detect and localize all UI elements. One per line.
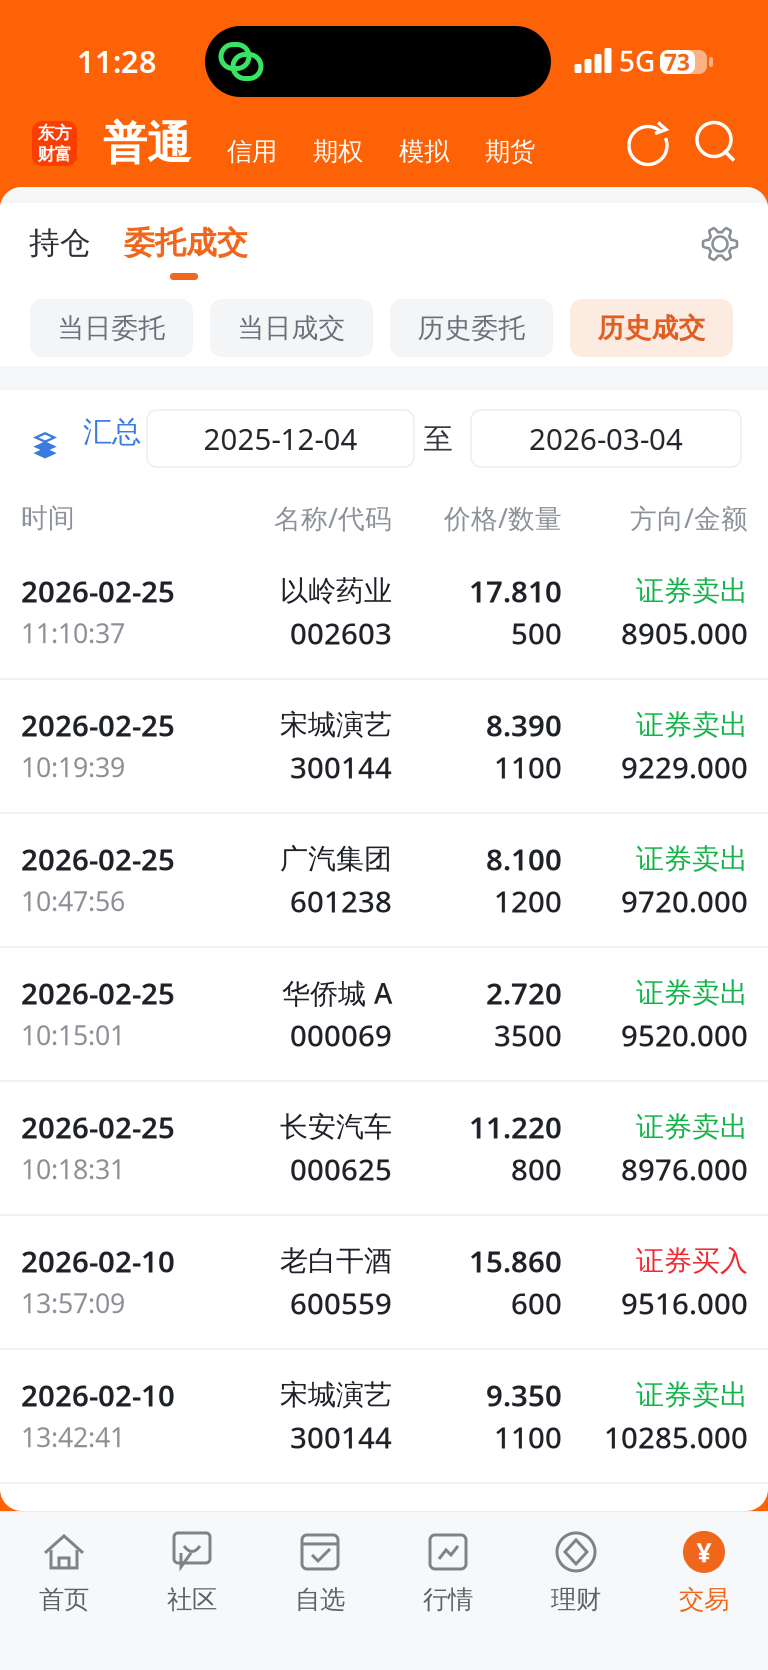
staticText: 000069: [290, 1015, 392, 1054]
staticText: 8.100: [486, 839, 562, 878]
button[interactable]: 当日委托: [30, 299, 193, 357]
staticText: 信用: [227, 136, 277, 167]
button[interactable]: 期货: [449, 128, 535, 159]
button[interactable]: 2026-02-25: [0, 814, 768, 948]
button[interactable]: 当日成交: [210, 299, 373, 357]
staticText: 500: [511, 613, 562, 652]
staticText: 9516.000: [621, 1283, 748, 1322]
button[interactable]: 历史委托: [390, 299, 553, 357]
staticText: 证券卖出: [636, 708, 748, 742]
button[interactable]: 历史成交: [570, 299, 733, 357]
staticText: 证券卖出: [636, 1378, 748, 1412]
staticText: 持仓: [29, 224, 91, 262]
staticText: 601238: [290, 881, 392, 920]
staticText: 证券买入: [636, 1244, 748, 1278]
staticText: 理财: [551, 1584, 601, 1615]
button[interactable]: 理财: [512, 1512, 640, 1632]
staticText: 以岭药业: [280, 574, 392, 608]
staticText: 3500: [494, 1015, 562, 1054]
staticText: 15.860: [469, 1241, 562, 1280]
staticText: 当日成交: [237, 312, 345, 344]
staticText: 期权: [313, 136, 363, 167]
staticText: 宋城演艺: [280, 708, 392, 742]
staticText: 10:15:01: [21, 1017, 125, 1053]
staticText: 财富: [37, 143, 71, 165]
button[interactable]: Refresh: [625, 120, 671, 166]
staticText: 至: [423, 421, 452, 457]
staticText: 17.810: [469, 571, 562, 610]
staticText: 证券卖出: [636, 574, 748, 608]
button[interactable]: 2026-02-25: [0, 680, 768, 814]
staticText: 73: [664, 47, 690, 77]
staticText: 2026-03-04: [529, 419, 683, 458]
button[interactable]: 信用: [191, 128, 277, 159]
staticText: 2026-02-25: [21, 973, 175, 1012]
staticText: 10:18:31: [21, 1151, 125, 1187]
staticText: 13:42:41: [21, 1419, 125, 1455]
staticText: 交易: [679, 1584, 729, 1615]
button[interactable]: 首页: [0, 1512, 128, 1632]
staticText: 2026-02-25: [21, 839, 175, 878]
staticText: 8.390: [486, 705, 562, 744]
staticText: 证券卖出: [636, 976, 748, 1010]
staticText: 8976.000: [621, 1149, 748, 1188]
button[interactable]: 东方财富: [32, 121, 77, 166]
staticText: 价格/数量: [444, 500, 562, 536]
button[interactable]: 普通: [77, 116, 191, 170]
staticText: 2.720: [486, 973, 562, 1012]
button[interactable]: 社区: [128, 1512, 256, 1632]
staticText: 老白干酒: [280, 1244, 392, 1278]
staticText: 000625: [290, 1149, 392, 1188]
staticText: 广汽集团: [280, 842, 392, 876]
button[interactable]: Search: [671, 120, 740, 166]
button[interactable]: 行情: [384, 1512, 512, 1632]
staticText: 时间: [21, 502, 75, 534]
button[interactable]: 2026-02-25: [0, 948, 768, 1082]
staticText: 10285.000: [604, 1417, 748, 1456]
button[interactable]: 2026-02-10: [0, 1216, 768, 1350]
staticText: 2026-02-25: [21, 705, 175, 744]
button[interactable]: 2026-02-25: [0, 546, 768, 680]
staticText: 模拟: [399, 136, 449, 167]
button[interactable]: 汇总: [31, 414, 155, 450]
staticText: 10:19:39: [21, 749, 125, 785]
staticText: 证券卖出: [636, 1110, 748, 1144]
staticText: 300144: [290, 747, 392, 786]
staticText: 宋城演艺: [280, 1378, 392, 1412]
button[interactable]: 期权: [277, 128, 363, 159]
staticText: 600: [511, 1283, 562, 1322]
staticText: 9.350: [486, 1375, 562, 1414]
staticText: 首页: [39, 1584, 89, 1615]
staticText: 9720.000: [621, 881, 748, 920]
staticText: 2026-02-25: [21, 1107, 175, 1146]
button[interactable]: 持仓: [29, 221, 99, 265]
staticText: 2026-02-10: [21, 1241, 175, 1280]
staticText: 002603: [290, 613, 392, 652]
staticText: 1200: [494, 881, 562, 920]
staticText: 普通: [103, 116, 191, 170]
staticText: 11:28: [77, 41, 157, 81]
staticText: 长安汽车: [280, 1110, 392, 1144]
staticText: 8905.000: [621, 613, 748, 652]
button[interactable]: ¥: [640, 1512, 768, 1632]
button[interactable]: 2025-12-04: [147, 410, 414, 467]
button[interactable]: 2026-03-04: [471, 410, 741, 467]
staticText: 9229.000: [621, 747, 748, 786]
staticText: 10:47:56: [21, 883, 125, 919]
button[interactable]: 模拟: [363, 128, 449, 159]
button[interactable]: 2026-02-25: [0, 1082, 768, 1216]
staticText: 2026-02-10: [21, 1375, 175, 1414]
button[interactable]: 2026-02-10: [0, 1350, 768, 1484]
staticText: 方向/金额: [630, 500, 748, 536]
staticText: 东方: [37, 122, 71, 143]
button[interactable]: 自选: [256, 1512, 384, 1632]
staticText: 当日委托: [57, 312, 165, 344]
staticText: 600559: [290, 1283, 392, 1322]
staticText: 11:10:37: [21, 615, 125, 651]
staticText: 行情: [423, 1584, 473, 1615]
button[interactable]: 委托成交: [124, 221, 254, 283]
staticText: 13:57:09: [21, 1285, 125, 1321]
button[interactable]: Settings: [700, 224, 740, 264]
staticText: 11.220: [469, 1107, 562, 1146]
staticText: 2025-12-04: [203, 419, 357, 458]
